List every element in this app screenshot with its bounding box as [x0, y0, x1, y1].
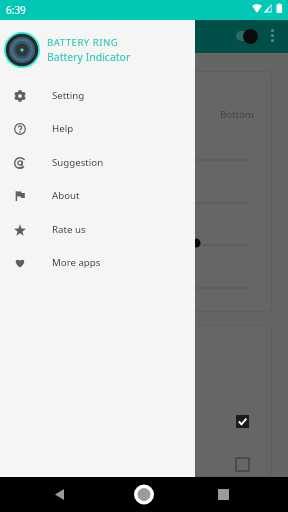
- button[interactable]: Help: [0, 112, 195, 145]
- button[interactable]: Checked: [236, 415, 249, 428]
- button[interactable]: More apps: [0, 246, 195, 279]
- button[interactable]: Bottom: [16, 71, 272, 312]
- staticText: Help: [52, 122, 74, 135]
- button[interactable]: More options: [268, 24, 276, 46]
- staticText: BATTERY RING: [47, 36, 119, 49]
- button[interactable]: Toggle battery ring: [234, 24, 260, 48]
- staticText: 6:39: [6, 3, 26, 17]
- button[interactable]: Suggestion: [0, 146, 195, 179]
- button[interactable]: Checked: [16, 325, 272, 477]
- staticText: Setting: [52, 89, 85, 102]
- staticText: Suggestion: [52, 156, 104, 169]
- button[interactable]: About: [0, 179, 195, 212]
- staticText: More apps: [52, 256, 101, 269]
- staticText: Bottom: [220, 108, 254, 121]
- button[interactable]: Rate us: [0, 213, 195, 246]
- staticText: Rate us: [52, 223, 86, 236]
- button[interactable]: Unchecked: [236, 458, 249, 471]
- button[interactable]: BATTERY RING: [0, 32, 195, 68]
- button[interactable]: Setting: [0, 79, 195, 112]
- staticText: About: [52, 189, 80, 202]
- staticText: Battery Indicator: [47, 50, 131, 64]
